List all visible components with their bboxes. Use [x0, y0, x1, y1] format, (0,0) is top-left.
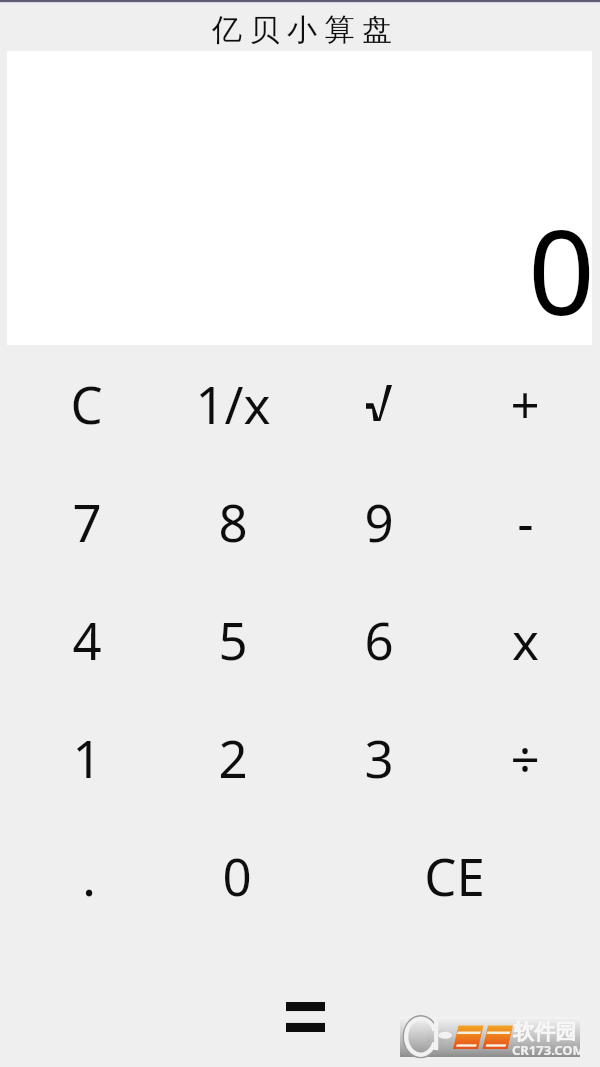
staticText: C — [70, 369, 103, 438]
staticText: 0 — [222, 841, 252, 910]
button[interactable]: x — [452, 580, 598, 698]
button[interactable]: CE — [310, 816, 598, 934]
button[interactable]: ÷ — [452, 698, 598, 816]
button[interactable]: 6 — [306, 580, 452, 698]
staticText: 8 — [218, 487, 248, 556]
button[interactable]: 2 — [160, 698, 306, 816]
staticText: 0 — [528, 190, 595, 349]
staticText: x — [512, 605, 539, 674]
button[interactable]: 0 — [164, 816, 310, 934]
staticText: 3 — [364, 723, 394, 792]
button[interactable]: 1/x — [160, 344, 306, 462]
staticText: 6 — [364, 605, 394, 674]
staticText: ÷ — [510, 723, 540, 792]
staticText: 4 — [72, 605, 102, 674]
button[interactable]: 1 — [13, 698, 160, 816]
staticText: CE — [424, 841, 485, 910]
staticText: 7 — [72, 487, 102, 556]
button[interactable]: 5 — [160, 580, 306, 698]
button[interactable]: C — [13, 344, 160, 462]
button[interactable]: Equals — [13, 967, 598, 1067]
button[interactable]: 7 — [13, 462, 160, 580]
staticText: 软件园 — [513, 1019, 576, 1045]
button[interactable]: . — [13, 816, 164, 934]
button[interactable]: Square root — [306, 344, 452, 462]
staticText: 9 — [364, 487, 394, 556]
button[interactable]: + — [452, 344, 598, 462]
staticText: 1 — [72, 723, 102, 792]
button[interactable]: 4 — [13, 580, 160, 698]
button[interactable]: 9 — [306, 462, 452, 580]
staticText: 5 — [218, 605, 248, 674]
staticText: 亿贝小算盘 — [212, 11, 400, 49]
staticText: - — [517, 487, 534, 556]
button[interactable]: - — [452, 462, 598, 580]
staticText: CR173.COM — [512, 1041, 585, 1059]
button[interactable]: 8 — [160, 462, 306, 580]
staticText: + — [510, 369, 540, 438]
staticText: 2 — [218, 723, 248, 792]
button[interactable]: 3 — [306, 698, 452, 816]
staticText: . — [82, 841, 96, 910]
staticText: 1/x — [195, 369, 271, 438]
